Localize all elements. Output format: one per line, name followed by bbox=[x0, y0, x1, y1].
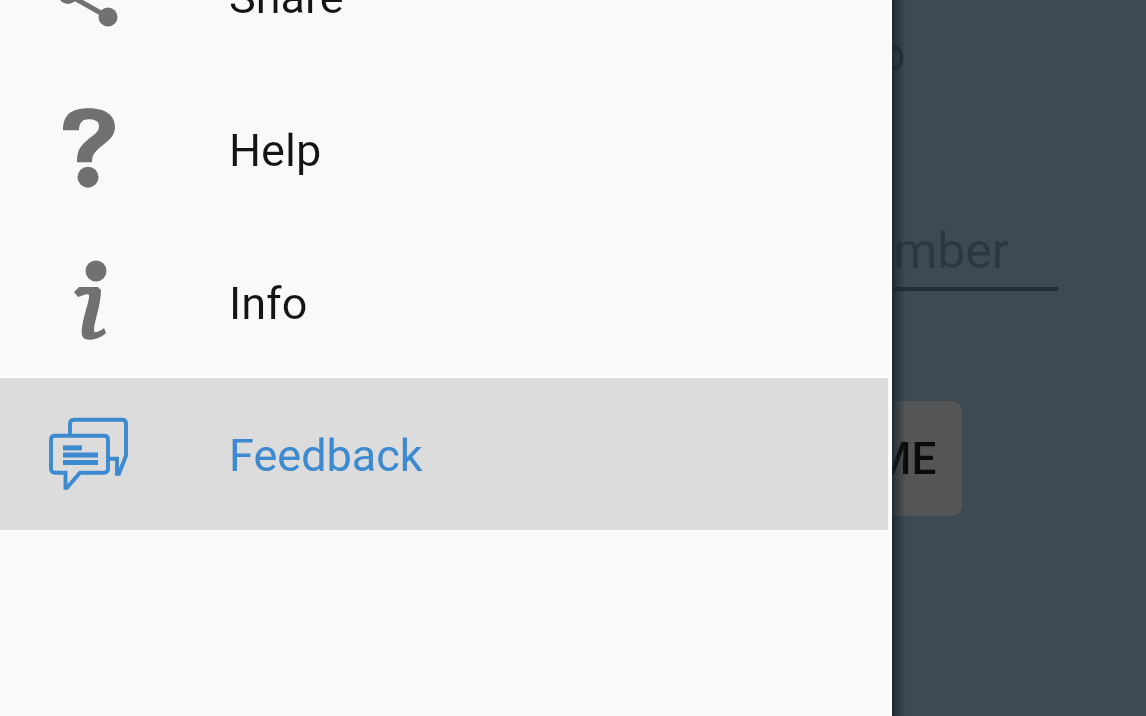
other: Help bbox=[48, 111, 128, 191]
staticText: Share bbox=[229, 0, 344, 24]
button[interactable]: START GAME bbox=[646, 401, 962, 516]
staticText: Info bbox=[229, 277, 308, 330]
other: Feedback bbox=[44, 412, 132, 500]
staticText: START GAME bbox=[671, 433, 937, 485]
other: Info bbox=[48, 264, 128, 344]
staticText: Enter number bbox=[710, 222, 1009, 281]
staticText: Group bbox=[787, 29, 906, 81]
staticText: Help bbox=[229, 124, 322, 177]
button[interactable]: Info bbox=[0, 227, 892, 380]
button[interactable]: Help bbox=[0, 74, 892, 227]
button[interactable]: Share bbox=[0, 0, 892, 74]
staticText: Feedback bbox=[229, 429, 423, 482]
button[interactable]: Feedback bbox=[0, 379, 892, 532]
other: Share bbox=[48, 0, 128, 38]
